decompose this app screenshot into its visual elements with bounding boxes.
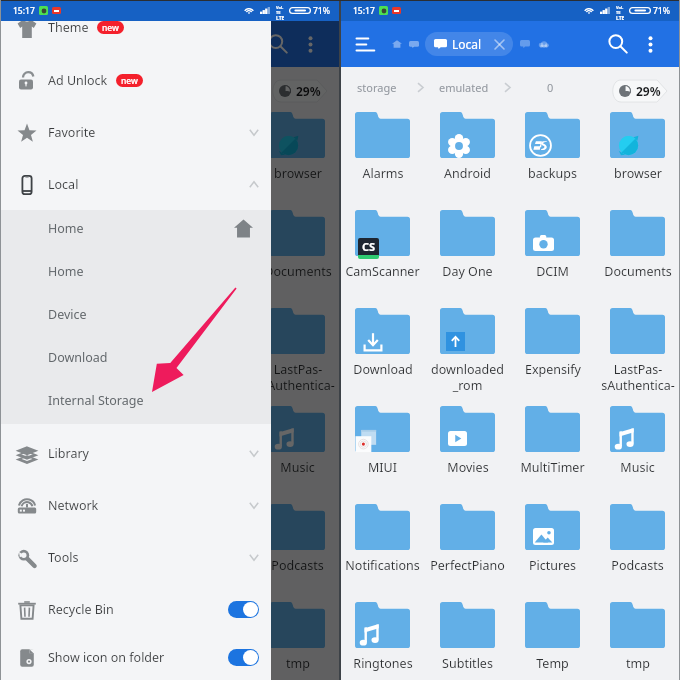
button[interactable]: Podcasts <box>595 499 680 597</box>
button[interactable]: Documents <box>595 205 680 303</box>
button[interactable]: 0 <box>543 67 558 107</box>
button[interactable]: MultiTimer <box>510 401 595 499</box>
button[interactable]: Podcasts <box>255 499 340 597</box>
button[interactable]: downloaded _rom <box>425 303 510 401</box>
button[interactable]: DCIM <box>170 205 255 303</box>
button[interactable]: storage <box>353 67 401 107</box>
button[interactable]: Movies <box>85 401 170 499</box>
button[interactable]: Show icon on folder <box>0 635 271 680</box>
button[interactable]: downloaded _rom <box>85 303 170 401</box>
button[interactable]: Pictures <box>510 499 595 597</box>
button[interactable]: Network <box>0 479 271 531</box>
button[interactable]: PerfectPiano <box>85 499 170 597</box>
button[interactable]: Expensify <box>510 303 595 401</box>
button[interactable]: Music <box>595 401 680 499</box>
button[interactable]: Expensify <box>170 303 255 401</box>
button[interactable]: Movies <box>425 401 510 499</box>
button[interactable]: LastPas- sAuthentica- <box>595 303 680 401</box>
button[interactable]: backups <box>510 107 595 205</box>
button[interactable]: Favorite <box>0 106 271 158</box>
staticText: CamScanner <box>5 263 80 280</box>
button[interactable]: Day One <box>425 205 510 303</box>
button[interactable]: emulated <box>435 67 493 107</box>
button[interactable]: Subtitles <box>425 597 510 680</box>
button[interactable]: MIUI <box>0 401 85 499</box>
button[interactable]: Music <box>255 401 340 499</box>
staticText: Subtitles <box>102 655 153 672</box>
button[interactable]: More options <box>296 30 324 58</box>
button[interactable]: MIUI <box>340 401 425 499</box>
button[interactable]: Local <box>0 158 271 210</box>
button[interactable]: Subtitles <box>85 597 170 680</box>
staticText: Network <box>48 497 99 514</box>
staticText: Device <box>48 306 87 323</box>
button[interactable]: Home <box>0 250 271 293</box>
button[interactable]: Android <box>85 107 170 205</box>
button[interactable]: Ad Unlock <box>0 54 271 106</box>
staticText: LTE <box>276 15 285 22</box>
staticText: Alarms <box>22 165 64 182</box>
button[interactable]: tmp <box>595 597 680 680</box>
staticText: Local <box>48 176 79 193</box>
button[interactable]: Download <box>0 336 271 379</box>
button[interactable]: browser <box>595 107 680 205</box>
button[interactable]: Temp <box>510 597 595 680</box>
button[interactable]: Alarms <box>340 107 425 205</box>
staticText: Internal Storage <box>48 392 144 409</box>
button[interactable]: Open navigation drawer <box>348 27 382 61</box>
button[interactable]: Storage usage 29 percent <box>610 80 667 102</box>
button[interactable]: More options <box>636 30 664 58</box>
button[interactable]: browser <box>255 107 340 205</box>
button[interactable]: Theme <box>0 21 271 54</box>
button[interactable]: CS <box>0 205 85 303</box>
button[interactable]: Internal Storage <box>0 379 271 421</box>
staticText: browser <box>614 165 662 182</box>
button[interactable]: MultiTimer <box>170 401 255 499</box>
button[interactable]: Storage usage 29 percent <box>270 80 327 102</box>
button[interactable]: Download <box>340 303 425 401</box>
staticText: LastPas- sAuthentica- <box>601 361 675 393</box>
button[interactable]: Recycle Bin <box>0 583 271 635</box>
button[interactable]: PerfectPiano <box>425 499 510 597</box>
button[interactable]: Ringtones <box>340 597 425 680</box>
button[interactable]: Android <box>425 107 510 205</box>
button[interactable]: Documents <box>255 205 340 303</box>
button[interactable]: Local <box>85 32 173 56</box>
button[interactable]: CS <box>340 205 425 303</box>
button[interactable]: DCIM <box>510 205 595 303</box>
button[interactable]: Library <box>0 427 271 479</box>
staticText: CamScanner <box>345 263 420 280</box>
button[interactable]: Search <box>601 27 635 61</box>
button[interactable]: Device <box>0 293 271 336</box>
button[interactable]: Temp <box>170 597 255 680</box>
button[interactable]: Notifications <box>340 499 425 597</box>
button[interactable]: emulated <box>95 67 153 107</box>
button[interactable]: Device tab <box>402 32 426 56</box>
button[interactable]: LastPas- sAuthentica- <box>255 303 340 401</box>
staticText: Ringtones <box>13 655 73 672</box>
button[interactable]: Ringtones <box>0 597 85 680</box>
button[interactable]: Local <box>425 32 513 56</box>
staticText: Podcasts <box>271 557 324 574</box>
button[interactable]: Open navigation drawer <box>8 27 42 61</box>
button[interactable]: Tools <box>0 531 271 583</box>
button[interactable]: Alarms <box>0 107 85 205</box>
button[interactable]: storage <box>13 67 61 107</box>
staticText: Subtitles <box>442 655 493 672</box>
button[interactable]: Home tab <box>385 32 409 56</box>
button[interactable]: tmp <box>255 597 340 680</box>
button[interactable]: Notifications <box>0 499 85 597</box>
button[interactable]: Home <box>0 210 271 250</box>
staticText: LastPas- sAuthentica- <box>261 361 335 393</box>
button[interactable]: Search <box>261 27 295 61</box>
button[interactable]: Download <box>0 303 85 401</box>
staticText: Movies <box>447 459 489 476</box>
